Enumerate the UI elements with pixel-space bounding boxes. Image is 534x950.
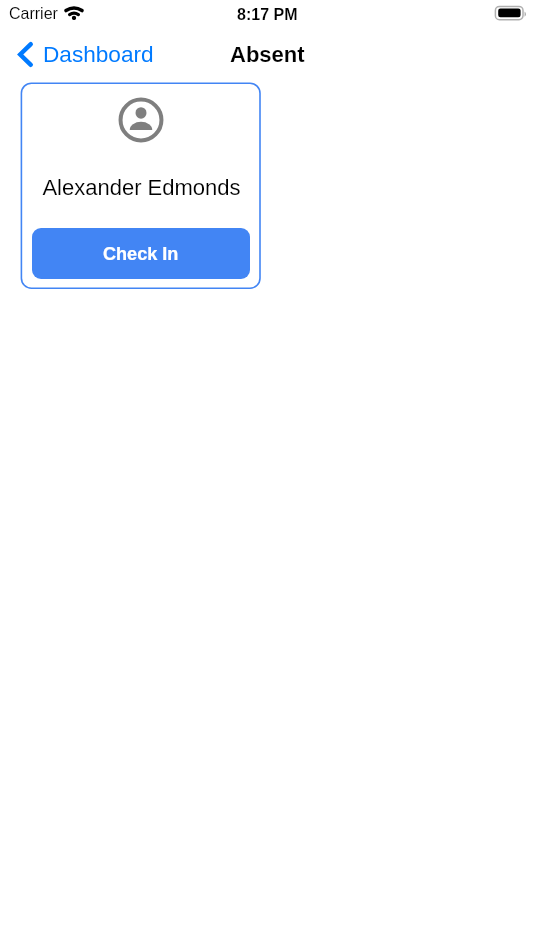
staticText: Carrier [9, 5, 58, 23]
button[interactable]: Check In [32, 228, 250, 279]
staticText: Dashboard [43, 42, 154, 67]
staticText: Check In [103, 244, 179, 264]
button[interactable]: Back [12, 38, 164, 71]
staticText: Absent [230, 42, 305, 67]
other: Wi-Fi [64, 6, 84, 20]
other: Back [18, 42, 33, 67]
staticText: Alexander Edmonds [42, 175, 241, 200]
staticText: 8:17 PM [237, 6, 298, 24]
other: Battery [494, 4, 530, 22]
